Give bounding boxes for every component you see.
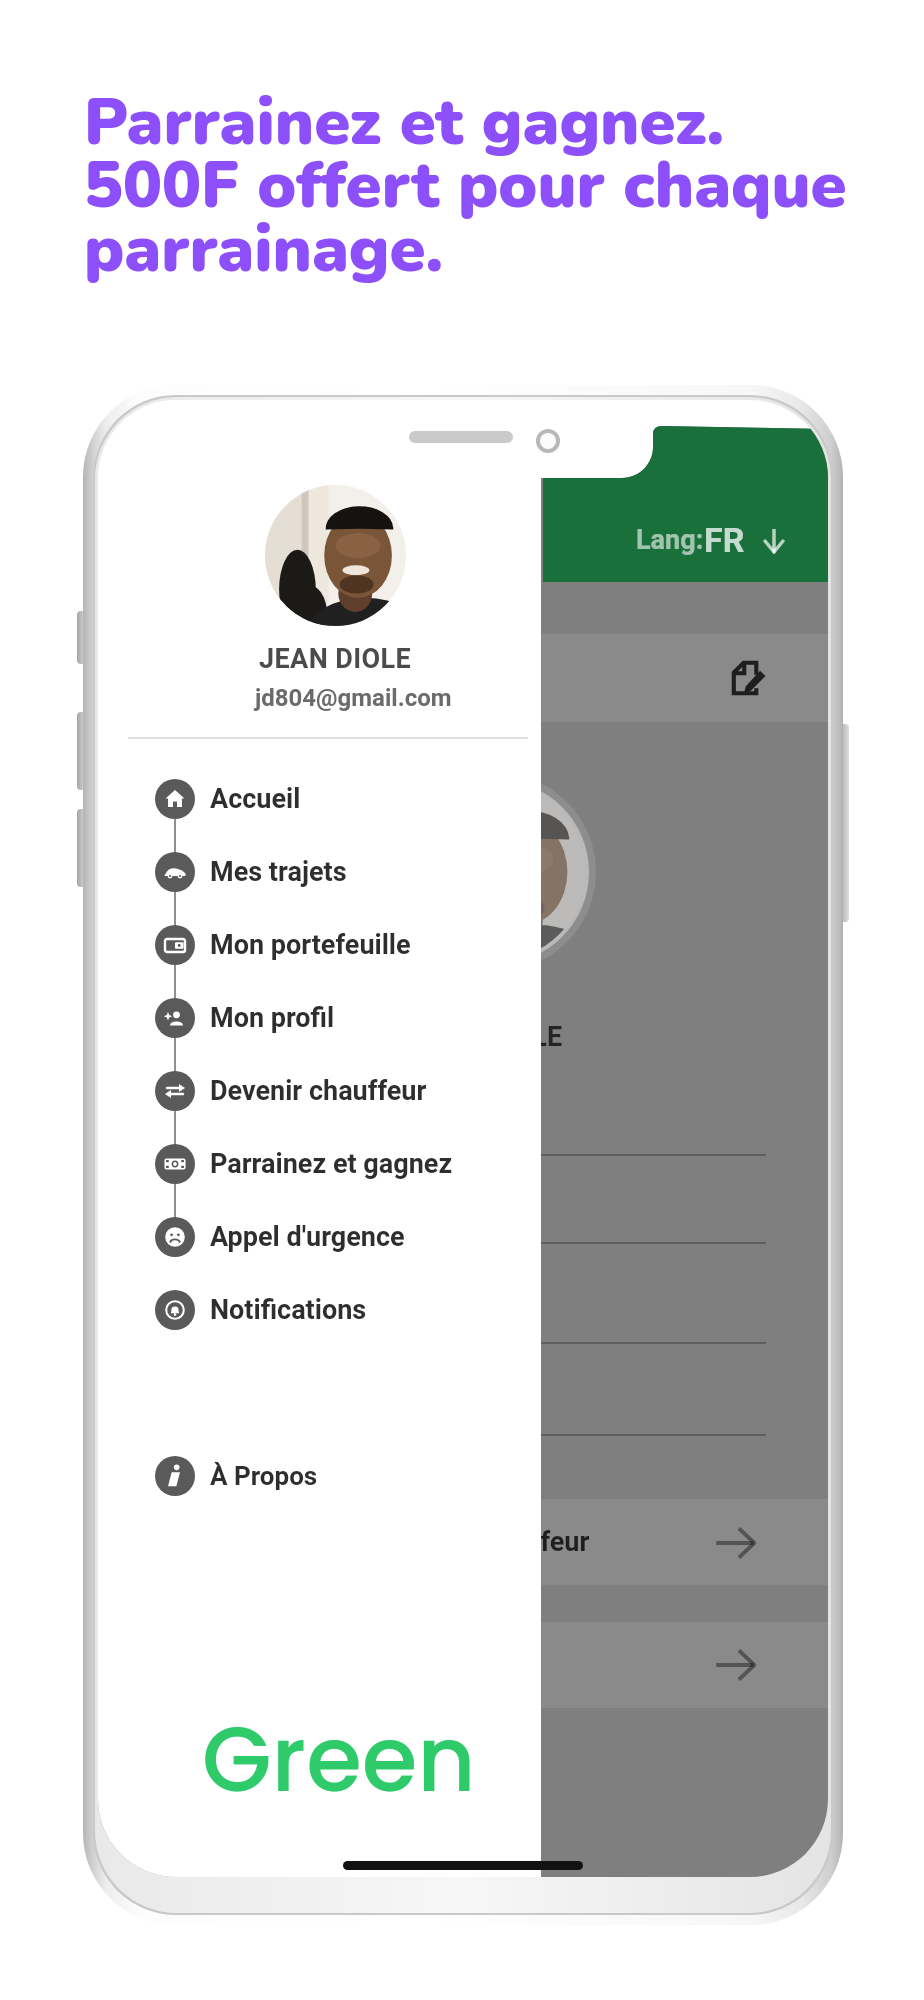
staticText: JEAN DIOLE bbox=[259, 643, 412, 675]
staticText: Green bbox=[202, 1697, 476, 1823]
staticText: Notifications bbox=[210, 1294, 367, 1326]
button[interactable]: Mon portefeuille bbox=[98, 909, 541, 981]
staticText: Parrainez et gagnez bbox=[210, 1148, 453, 1180]
staticText: Devenir chauffeur bbox=[373, 1526, 590, 1558]
staticText: JEAN DIOLE bbox=[414, 1021, 563, 1053]
staticText: jd804@gmail.com bbox=[255, 684, 452, 712]
staticText: Mon profil bbox=[210, 1002, 335, 1034]
button[interactable]: Edit profile bbox=[730, 659, 768, 697]
staticText: Lang: bbox=[636, 524, 704, 556]
staticText: À Propos bbox=[210, 1461, 318, 1491]
staticText: Mes trajets bbox=[210, 856, 347, 888]
button[interactable]: Notifications bbox=[98, 1274, 541, 1346]
staticText: Appel d'urgence bbox=[210, 1221, 405, 1253]
staticText: Devenir chauffeur bbox=[210, 1075, 427, 1107]
staticText: FR bbox=[704, 520, 745, 560]
staticText: Parrainez et gagnez. 500F offert pour ch… bbox=[84, 78, 847, 294]
button[interactable]: Change language bbox=[636, 514, 788, 566]
button[interactable]: Mon profil bbox=[98, 982, 541, 1054]
button[interactable]: Appel d'urgence bbox=[98, 1201, 541, 1273]
button[interactable]: Parrainez et gagnez bbox=[98, 1128, 541, 1200]
staticText: Mon portefeuille bbox=[210, 929, 411, 961]
button[interactable]: Devenir chauffeur bbox=[98, 1055, 541, 1127]
button[interactable]: À Propos bbox=[98, 1444, 541, 1508]
button[interactable]: Mes trajets bbox=[98, 836, 541, 908]
button[interactable]: Accueil bbox=[98, 763, 541, 835]
staticText: Accueil bbox=[210, 783, 301, 815]
